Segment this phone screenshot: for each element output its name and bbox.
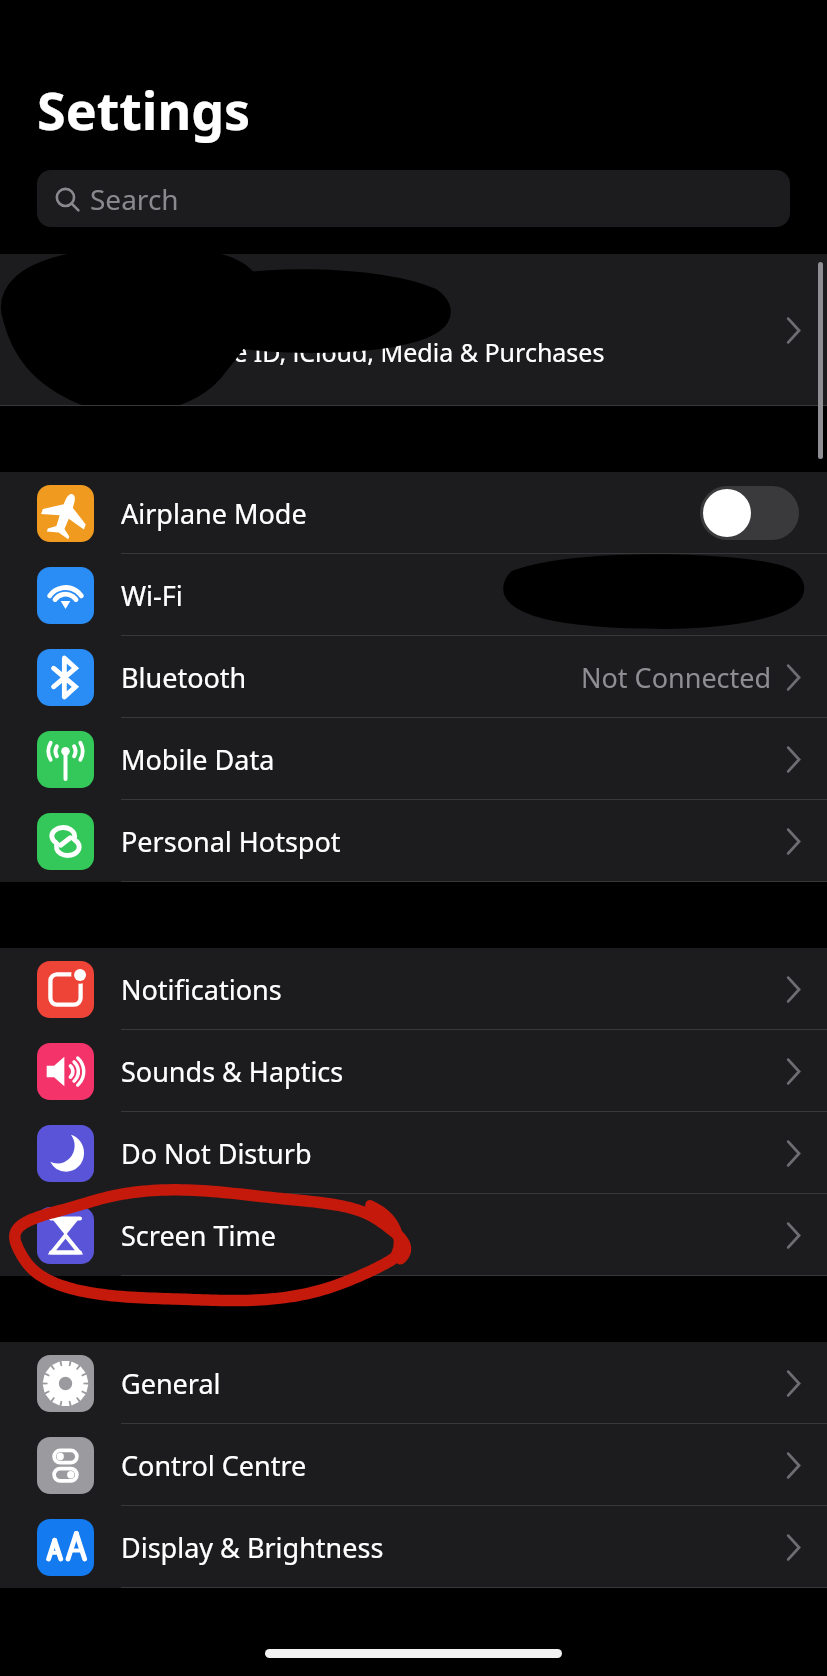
staticText: Wi-Fi — [121, 577, 183, 614]
staticText: Control Centre — [121, 1447, 307, 1484]
staticText: Search — [90, 180, 179, 218]
button[interactable]: Mobile Data — [0, 718, 827, 800]
button[interactable]: Screen Time — [0, 1194, 827, 1276]
button[interactable]: Apple ID, iCloud, Media & Purchases — [0, 254, 827, 406]
button[interactable]: Personal Hotspot — [0, 800, 827, 882]
button[interactable]: Airplane Mode toggle, off — [700, 486, 799, 540]
button[interactable]: Sounds & Haptics — [0, 1030, 827, 1112]
staticText: Display & Brightness — [121, 1529, 384, 1566]
staticText: Sounds & Haptics — [121, 1053, 344, 1090]
staticText: Screen Time — [121, 1217, 277, 1254]
staticText: Do Not Disturb — [121, 1135, 312, 1172]
staticText: Bluetooth — [121, 659, 247, 696]
staticText: General — [121, 1365, 221, 1402]
staticText: Airplane Mode — [121, 495, 307, 532]
button[interactable]: Display & Brightness — [0, 1506, 827, 1588]
staticText: Personal Hotspot — [121, 823, 341, 860]
staticText: Settings — [37, 74, 251, 145]
staticText: Apple ID, iCloud, Media & Purchases — [180, 335, 605, 369]
button[interactable]: Bluetooth — [0, 636, 827, 718]
button[interactable]: Notifications — [0, 948, 827, 1030]
button[interactable]: Search — [37, 170, 790, 227]
button[interactable]: Do Not Disturb — [0, 1112, 827, 1194]
button[interactable]: Wi-Fi — [0, 554, 827, 636]
staticText: Mobile Data — [121, 741, 275, 778]
staticText: Notifications — [121, 971, 282, 1008]
button[interactable]: Control Centre — [0, 1424, 827, 1506]
button[interactable]: General — [0, 1342, 827, 1424]
button[interactable]: Airplane Mode — [0, 472, 827, 554]
staticText: Not Connected — [581, 659, 772, 696]
